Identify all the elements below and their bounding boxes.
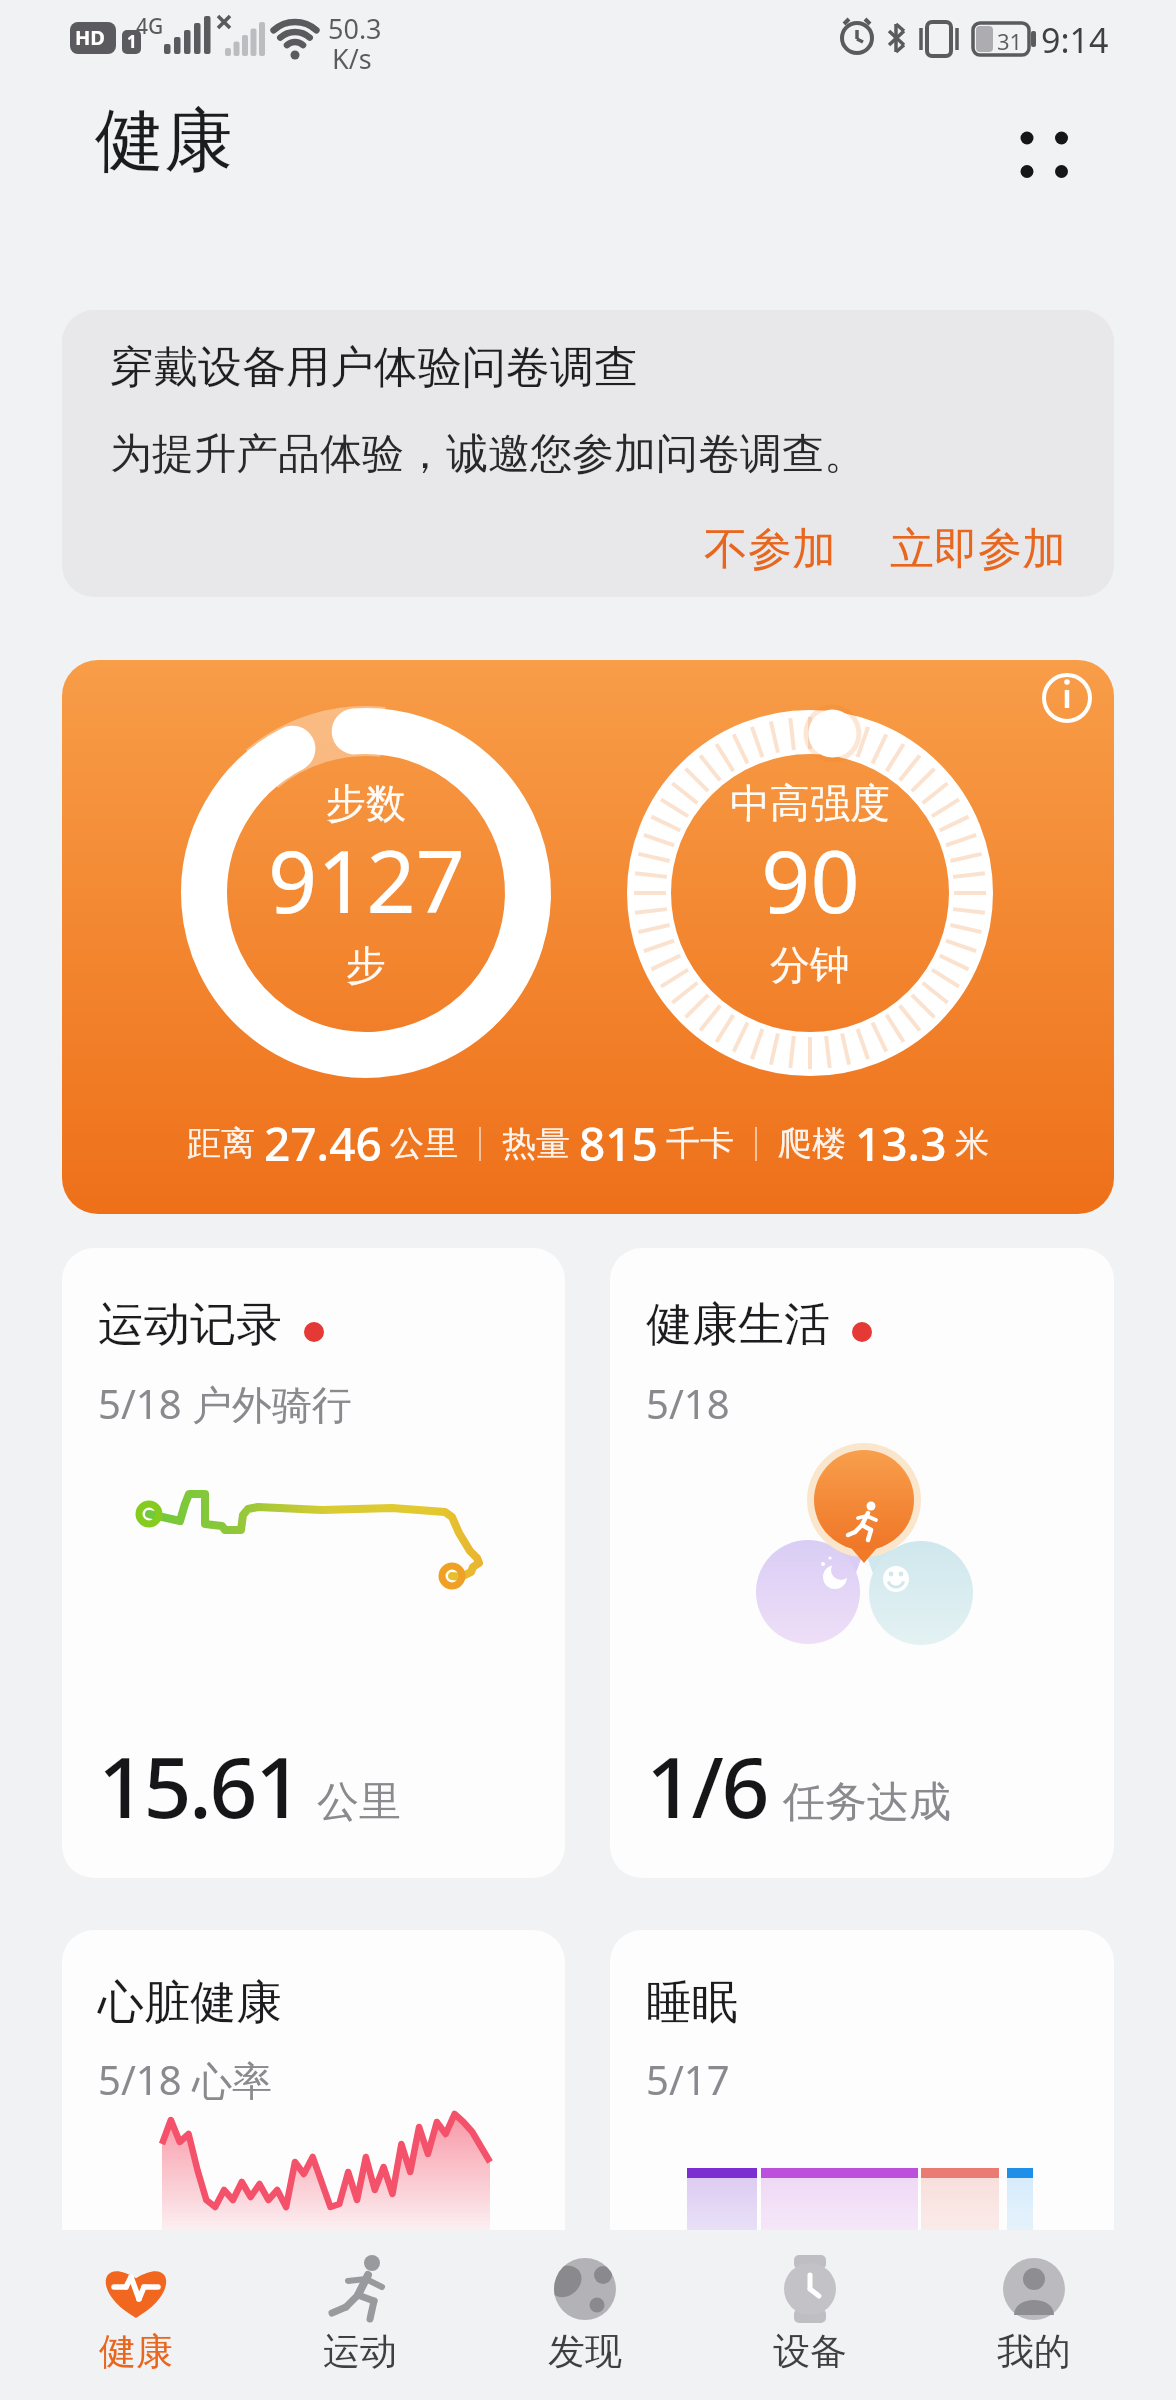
staticText: 90: [761, 821, 860, 938]
staticText: K/s: [332, 40, 372, 77]
button[interactable]: 立即参加: [890, 522, 1066, 577]
button[interactable]: 不参加: [680, 522, 860, 577]
button[interactable]: 健康生活: [610, 1248, 1114, 1878]
staticText: 睡眠: [646, 1974, 738, 2032]
staticText: 运动记录: [98, 1296, 282, 1354]
staticText: 5/18: [646, 1376, 730, 1430]
staticText: 健康: [99, 2328, 173, 2375]
button[interactable]: [280, 2231, 440, 2400]
button[interactable]: 步数: [62, 660, 1114, 1214]
button[interactable]: [505, 2231, 665, 2400]
staticText: 千卡: [666, 1122, 734, 1165]
staticText: 不参加: [704, 522, 836, 577]
button[interactable]: 运动记录: [62, 1248, 565, 1878]
staticText: 心脏健康: [98, 1974, 282, 2032]
staticText: 公里: [317, 1776, 401, 1829]
staticText: 1/6: [646, 1728, 767, 1842]
staticText: 分钟: [770, 940, 850, 990]
staticText: 815: [579, 1112, 658, 1175]
staticText: 爬楼: [778, 1122, 846, 1165]
staticText: 9:14: [1041, 17, 1109, 63]
button[interactable]: 心脏健康: [62, 1930, 565, 2230]
button[interactable]: 睡眠: [610, 1930, 1114, 2230]
staticText: 发现: [548, 2328, 622, 2375]
staticText: 米: [955, 1122, 989, 1165]
staticText: 5/18 户外骑行: [98, 1376, 352, 1431]
staticText: 31: [997, 26, 1023, 56]
staticText: 我的: [997, 2328, 1071, 2375]
staticText: 为提升产品体验，诚邀您参加问卷调查。: [110, 428, 866, 481]
staticText: 任务达成: [783, 1776, 951, 1829]
staticText: 步数: [326, 778, 406, 828]
staticText: 穿戴设备用户体验问卷调查: [110, 340, 638, 395]
staticText: 立即参加: [890, 522, 1066, 577]
staticText: HD: [75, 24, 105, 51]
staticText: 健康生活: [646, 1296, 830, 1354]
staticText: 设备: [773, 2328, 847, 2375]
staticText: 27.46: [264, 1112, 382, 1175]
button[interactable]: [1000, 110, 1090, 200]
staticText: 9127: [268, 821, 465, 938]
button[interactable]: [730, 2231, 890, 2400]
staticText: 50.3: [328, 10, 382, 47]
staticText: 中高强度: [730, 778, 890, 828]
staticText: 运动: [323, 2328, 397, 2375]
staticText: 13.3: [855, 1112, 947, 1175]
staticText: 步: [346, 940, 386, 990]
button[interactable]: [954, 2231, 1114, 2400]
staticText: 健康: [95, 98, 233, 185]
staticText: 热量: [502, 1122, 570, 1165]
staticText: 距离: [187, 1122, 255, 1165]
staticText: 5/18 心率: [98, 2052, 272, 2107]
staticText: 公里: [390, 1122, 458, 1165]
button[interactable]: [56, 2231, 216, 2400]
staticText: 1: [127, 30, 137, 53]
staticText: 4G: [136, 12, 164, 41]
staticText: 15.61: [98, 1728, 301, 1842]
staticText: 5/17: [646, 2052, 730, 2106]
